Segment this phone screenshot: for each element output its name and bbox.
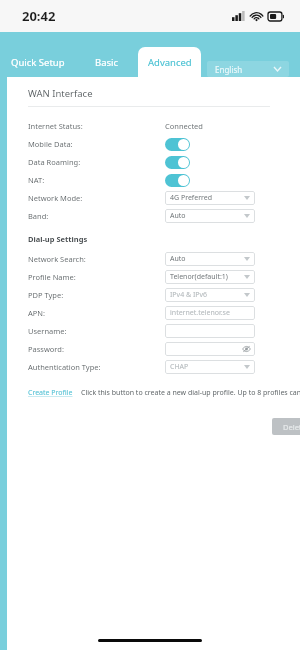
button[interactable]: English — [207, 61, 289, 77]
staticText: Click this button to create a new dial-u… — [81, 388, 300, 398]
staticText: Delete — [283, 422, 300, 432]
button[interactable]: Toggle — [165, 156, 190, 169]
button[interactable]: 4G Preferred — [165, 191, 255, 205]
staticText: Mobile Data: — [28, 139, 73, 149]
staticText: Network Search: — [28, 254, 86, 264]
staticText: Username: — [28, 326, 67, 336]
staticText: IPv4 & IPv6 — [170, 290, 208, 300]
staticText: APN: — [28, 308, 46, 318]
staticText: Create Profile — [28, 388, 73, 398]
button[interactable]: Auto — [165, 209, 255, 223]
staticText: Auto — [170, 254, 186, 264]
button[interactable]: Delete — [272, 418, 300, 435]
staticText: Password: — [28, 344, 64, 354]
staticText: Band: — [28, 211, 49, 221]
staticText: Quick Setup — [11, 56, 65, 69]
button[interactable]: Telenor(default:1) — [165, 270, 255, 284]
staticText: Dial-up Settings — [28, 234, 88, 244]
button[interactable]: Show password — [241, 344, 251, 354]
button[interactable]: Auto — [165, 252, 255, 266]
button[interactable]: Toggle — [165, 174, 190, 187]
staticText: Profile Name: — [28, 272, 76, 282]
staticText: internet.telenor.se — [170, 308, 230, 318]
button[interactable]: Create Profile — [28, 388, 73, 398]
button[interactable]: Advanced — [138, 47, 201, 77]
staticText: Authentication Type: — [28, 362, 101, 372]
button[interactable]: IPv4 & IPv6 — [165, 288, 255, 302]
button[interactable]: internet.telenor.se — [165, 306, 255, 320]
staticText: Connected — [165, 121, 203, 131]
staticText: NAT: — [28, 175, 45, 185]
staticText: Auto — [170, 211, 186, 221]
staticText: WAN Interface — [28, 87, 93, 100]
button[interactable]: Show password — [165, 342, 255, 356]
button[interactable] — [165, 324, 255, 338]
staticText: Internet Status: — [28, 121, 83, 131]
staticText: 4G Preferred — [170, 193, 213, 203]
staticText: Network Mode: — [28, 193, 83, 203]
button[interactable]: Toggle — [165, 138, 190, 151]
button[interactable]: CHAP — [165, 360, 255, 374]
staticText: English — [215, 64, 243, 75]
staticText: CHAP — [170, 362, 189, 372]
button[interactable]: Basic — [75, 47, 138, 77]
staticText: 20:42 — [22, 7, 56, 25]
staticText: PDP Type: — [28, 290, 64, 300]
staticText: Data Roaming: — [28, 157, 81, 167]
staticText: Telenor(default:1) — [170, 272, 228, 282]
staticText: Advanced — [148, 56, 192, 69]
staticText: Basic — [95, 56, 119, 69]
button[interactable]: Quick Setup — [0, 47, 75, 77]
